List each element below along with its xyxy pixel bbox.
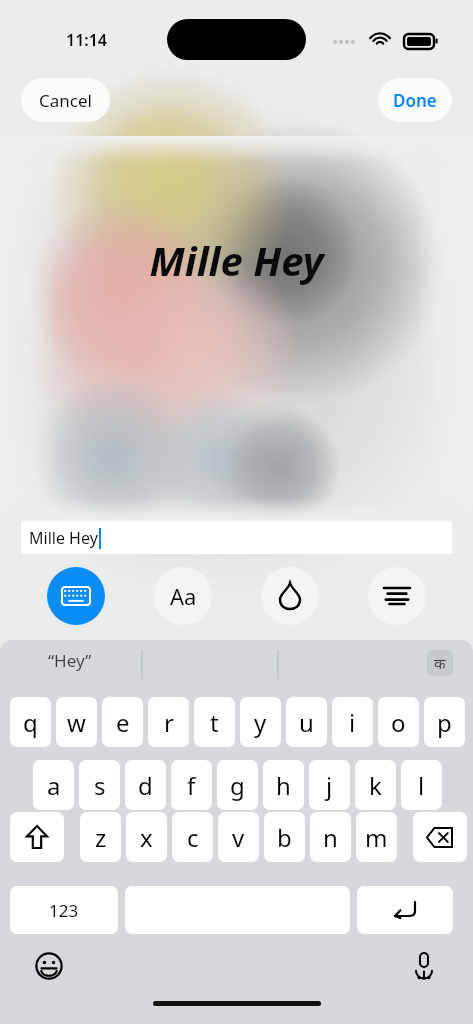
- staticText: Aa: [170, 581, 197, 611]
- staticText: y: [254, 706, 267, 739]
- staticText: g: [230, 769, 245, 802]
- staticText: i: [349, 706, 356, 739]
- button[interactable]: 123: [10, 886, 118, 934]
- staticText: b: [277, 821, 292, 854]
- staticText: Mille Hey: [29, 527, 98, 549]
- button[interactable]: m: [356, 812, 397, 862]
- staticText: Cancel: [39, 89, 92, 112]
- staticText: 11:14: [66, 29, 108, 51]
- button[interactable]: b: [264, 812, 305, 862]
- staticText: r: [164, 706, 174, 739]
- staticText: e: [116, 706, 130, 739]
- button[interactable]: n: [310, 812, 351, 862]
- staticText: k: [369, 769, 382, 802]
- button[interactable]: Return: [357, 886, 453, 934]
- button[interactable]: f: [171, 760, 212, 810]
- staticText: n: [323, 821, 338, 854]
- staticText: j: [326, 769, 333, 802]
- staticText: क: [434, 653, 446, 673]
- button[interactable]: Cancel: [21, 78, 110, 122]
- button[interactable]: c: [172, 812, 213, 862]
- button[interactable]: “Hey”: [48, 649, 92, 672]
- button[interactable]: h: [263, 760, 304, 810]
- button[interactable]: Dictate: [404, 946, 444, 986]
- button[interactable]: e: [102, 697, 143, 747]
- staticText: l: [418, 769, 425, 802]
- button[interactable]: v: [218, 812, 259, 862]
- staticText: o: [391, 706, 406, 739]
- button[interactable]: u: [286, 697, 327, 747]
- button[interactable]: r: [148, 697, 189, 747]
- staticText: u: [299, 706, 314, 739]
- staticText: t: [210, 706, 219, 739]
- button[interactable]: s: [79, 760, 120, 810]
- button[interactable]: x: [126, 812, 167, 862]
- button[interactable]: Tool: [154, 567, 212, 625]
- button[interactable]: Shift: [10, 812, 64, 862]
- button[interactable]: i: [332, 697, 373, 747]
- staticText: Done: [393, 89, 437, 112]
- staticText: q: [23, 706, 38, 739]
- button[interactable]: Tool: [261, 567, 319, 625]
- button[interactable]: Done: [378, 78, 452, 122]
- staticText: d: [138, 769, 153, 802]
- button[interactable]: Emoji: [29, 946, 69, 986]
- button[interactable]: w: [56, 697, 97, 747]
- button[interactable]: Tool: [368, 567, 426, 625]
- button[interactable]: g: [217, 760, 258, 810]
- button[interactable]: j: [309, 760, 350, 810]
- button[interactable]: Keyboard: [47, 567, 105, 625]
- button[interactable]: Mille Hey: [21, 521, 452, 554]
- button[interactable]: d: [125, 760, 166, 810]
- button[interactable]: Backspace: [413, 812, 467, 862]
- staticText: Mille Hey: [0, 233, 473, 287]
- button[interactable]: k: [355, 760, 396, 810]
- button[interactable]: Switch language: [427, 650, 453, 676]
- staticText: v: [232, 821, 245, 854]
- staticText: z: [95, 821, 107, 854]
- staticText: 123: [49, 899, 79, 922]
- button[interactable]: o: [378, 697, 419, 747]
- staticText: s: [94, 769, 106, 802]
- button[interactable]: t: [194, 697, 235, 747]
- button[interactable]: l: [401, 760, 442, 810]
- button[interactable]: q: [10, 697, 51, 747]
- staticText: x: [140, 821, 153, 854]
- staticText: m: [365, 821, 388, 854]
- staticText: p: [437, 706, 452, 739]
- staticText: a: [47, 769, 61, 802]
- button[interactable]: y: [240, 697, 281, 747]
- button[interactable]: z: [80, 812, 121, 862]
- button[interactable]: p: [424, 697, 465, 747]
- staticText: f: [187, 769, 196, 802]
- button[interactable]: a: [33, 760, 74, 810]
- staticText: c: [187, 821, 199, 854]
- staticText: w: [67, 706, 86, 739]
- staticText: h: [276, 769, 291, 802]
